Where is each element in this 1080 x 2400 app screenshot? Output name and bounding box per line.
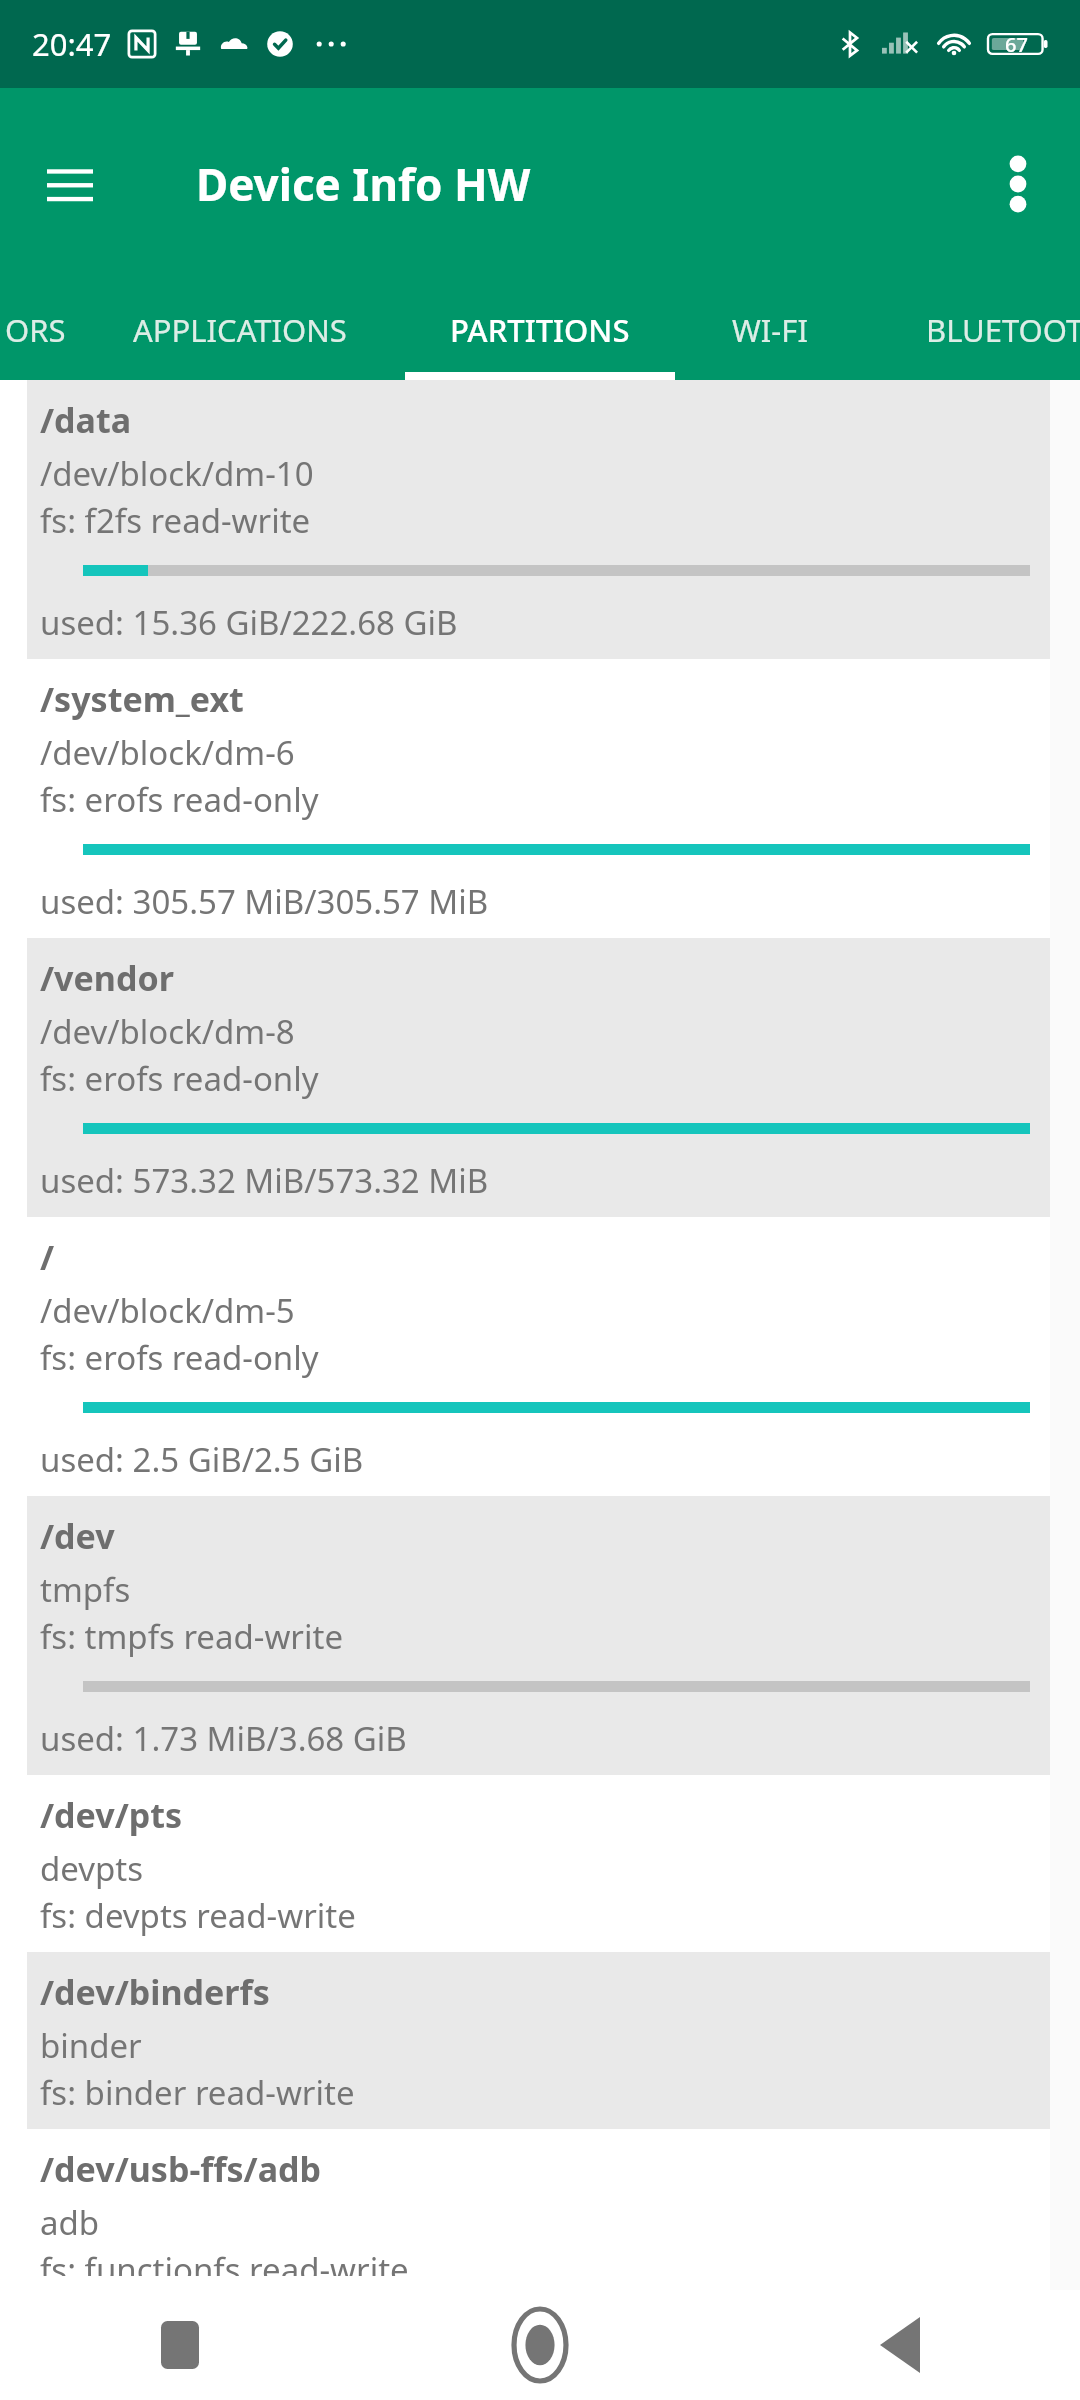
staticText: fs: erofs read-only: [40, 1056, 319, 1101]
staticText: fs: erofs read-only: [40, 777, 319, 822]
staticText: /dev/block/dm-6: [40, 730, 295, 775]
staticText: /dev/block/dm-10: [40, 451, 314, 496]
staticText: used: 1.73 MiB/3.68 GiB: [40, 1716, 407, 1761]
staticText: /dev: [40, 1513, 115, 1559]
button[interactable]: /dev: [27, 1496, 1050, 1775]
staticText: /dev/binderfs: [40, 1969, 270, 2015]
staticText: BLUETOOT: [926, 309, 1080, 351]
staticText: WI-FI: [732, 309, 808, 351]
button[interactable]: /dev/usb-ffs/adb: [27, 2129, 1050, 2290]
staticText: binder: [40, 2023, 142, 2068]
button[interactable]: /: [27, 1217, 1050, 1496]
staticText: Device Info HW: [196, 154, 531, 214]
staticText: fs: erofs read-only: [40, 1335, 319, 1380]
staticText: /: [40, 1234, 55, 1280]
button[interactable]: More options: [976, 142, 1060, 226]
staticText: /dev/block/dm-5: [40, 1288, 295, 1333]
staticText: PARTITIONS: [450, 309, 630, 351]
staticText: used: 305.57 MiB/305.57 MiB: [40, 879, 489, 924]
staticText: used: 573.32 MiB/573.32 MiB: [40, 1158, 489, 1203]
button[interactable]: ORS: [0, 280, 110, 380]
staticText: /vendor: [40, 955, 174, 1001]
staticText: fs: devpts read-write: [40, 1893, 356, 1938]
button[interactable]: Home: [360, 2290, 720, 2400]
staticText: used: 2.5 GiB/2.5 GiB: [40, 1437, 364, 1482]
button[interactable]: Back: [720, 2290, 1080, 2400]
staticText: fs: binder read-write: [40, 2070, 355, 2115]
staticText: /data: [40, 397, 132, 443]
button[interactable]: Open navigation drawer: [28, 142, 112, 226]
staticText: ORS: [5, 309, 66, 351]
staticText: 20:47: [32, 23, 112, 65]
staticText: /dev/pts: [40, 1792, 183, 1838]
staticText: /dev/usb-ffs/adb: [40, 2146, 322, 2192]
staticText: fs: tmpfs read-write: [40, 1614, 344, 1659]
staticText: used: 15.36 GiB/222.68 GiB: [40, 600, 458, 645]
staticText: APPLICATIONS: [133, 309, 347, 351]
button[interactable]: /data: [27, 380, 1050, 659]
staticText: /system_ext: [40, 676, 244, 722]
staticText: fs: f2fs read-write: [40, 498, 311, 543]
staticText: adb: [40, 2200, 100, 2245]
staticText: fs: functionfs read-write: [40, 2247, 409, 2276]
button[interactable]: BLUETOOT: [890, 280, 1080, 380]
button[interactable]: Recent apps: [0, 2290, 360, 2400]
button[interactable]: /system_ext: [27, 659, 1050, 938]
staticText: /dev/block/dm-8: [40, 1009, 295, 1054]
button[interactable]: WI-FI: [700, 280, 840, 380]
staticText: tmpfs: [40, 1567, 131, 1612]
button[interactable]: APPLICATIONS: [110, 280, 370, 380]
button[interactable]: /dev/pts: [27, 1775, 1050, 1952]
button[interactable]: /vendor: [27, 938, 1050, 1217]
button[interactable]: /dev/binderfs: [27, 1952, 1050, 2129]
button[interactable]: PARTITIONS: [405, 280, 675, 380]
staticText: 67: [1005, 31, 1028, 58]
staticText: devpts: [40, 1846, 144, 1891]
